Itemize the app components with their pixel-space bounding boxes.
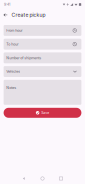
staticText: Number of shipments	[6, 56, 41, 60]
button[interactable]: Notes	[4, 80, 81, 105]
button[interactable]: Recent apps	[57, 174, 64, 183]
button[interactable]: From hour	[4, 25, 81, 36]
button[interactable]: Back	[20, 174, 27, 183]
staticText: Save	[41, 111, 49, 115]
staticText: Vehicles	[6, 69, 20, 74]
button[interactable]: Number of shipments	[4, 52, 81, 63]
staticText: From hour	[6, 28, 22, 33]
staticText: 9:41	[4, 2, 10, 7]
staticText: To hour	[6, 42, 18, 46]
button[interactable]: Back	[1, 10, 9, 20]
button[interactable]: Home	[39, 174, 46, 183]
button[interactable]: Vehicles	[4, 66, 81, 77]
staticText: Create pickup	[11, 12, 45, 18]
button[interactable]: Save	[4, 108, 81, 118]
staticText: Notes	[6, 85, 16, 90]
button[interactable]: To hour	[4, 39, 81, 50]
